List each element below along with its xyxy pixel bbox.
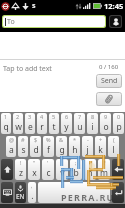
staticText: z [19, 167, 23, 179]
button[interactable]: 1 [1, 113, 11, 134]
staticText: . [31, 190, 34, 202]
button[interactable]: , [28, 182, 36, 203]
staticText: ! [20, 159, 22, 166]
staticText: + [99, 136, 103, 143]
button[interactable]: 4 [37, 113, 47, 134]
staticText: 3 [28, 113, 32, 120]
staticText: b [73, 167, 79, 179]
button[interactable]: ( [108, 136, 119, 157]
button[interactable]: 7 [74, 113, 85, 134]
staticText: c [46, 167, 51, 179]
staticText: g [59, 144, 65, 156]
staticText: 0 / 160 [99, 63, 119, 71]
button[interactable]: 8 [87, 113, 98, 134]
button[interactable]: Send [96, 74, 122, 88]
button[interactable]: - [82, 136, 93, 157]
staticText: m [100, 167, 108, 179]
button[interactable]: Pick contact [110, 16, 121, 27]
button[interactable]: 9 [100, 113, 111, 134]
staticText: j [86, 144, 89, 156]
button[interactable]: 3 [25, 113, 35, 134]
staticText: Send [101, 76, 118, 86]
staticText: 1 [4, 113, 8, 120]
staticText: 4 [40, 113, 44, 120]
button[interactable]: : [56, 159, 68, 180]
staticText: 7 [78, 113, 82, 120]
staticText: n [87, 167, 93, 179]
staticText: EN [16, 192, 25, 201]
button[interactable]: EN [15, 182, 26, 203]
button[interactable]: $ [30, 136, 41, 157]
button[interactable]: Enter [112, 182, 124, 203]
button[interactable]: 2 [13, 113, 23, 134]
staticText: s [21, 144, 26, 156]
staticText: e [28, 121, 33, 133]
staticText: o [103, 121, 109, 133]
button[interactable]: 5 [49, 113, 59, 134]
staticText: 12:45 [104, 1, 124, 11]
staticText: v [60, 167, 65, 179]
button[interactable]: ' [42, 159, 54, 180]
button[interactable]: Backspace [112, 159, 124, 180]
staticText: / [89, 159, 92, 166]
staticText: - [87, 136, 89, 143]
staticText: @ [9, 136, 14, 143]
staticText: , [31, 182, 33, 189]
button[interactable] [38, 182, 110, 203]
staticText: 0 [117, 113, 121, 120]
button[interactable]: 0 [113, 113, 124, 134]
button[interactable]: Tap to add text [0, 60, 96, 112]
button[interactable]: & [56, 136, 67, 157]
staticText: 9 [104, 113, 108, 120]
staticText: Tap to add text [3, 64, 52, 74]
staticText: 8 [91, 113, 95, 120]
button[interactable]: To [3, 16, 105, 27]
staticText: l [112, 144, 115, 156]
staticText: " [33, 159, 36, 166]
staticText: ' [47, 159, 49, 166]
button[interactable]: + [95, 136, 106, 157]
button[interactable]: * [69, 136, 80, 157]
staticText: k [98, 144, 103, 156]
staticText: r [40, 121, 44, 133]
button[interactable]: Keyboard settings [1, 182, 13, 203]
button[interactable]: % [43, 136, 54, 157]
button[interactable]: @ [6, 136, 16, 157]
staticText: h [72, 144, 78, 156]
staticText: : [61, 159, 63, 166]
staticText: w [15, 121, 22, 133]
button[interactable]: ; [70, 159, 82, 180]
staticText: i [91, 121, 94, 133]
staticText: # [21, 136, 25, 143]
button[interactable]: Shift [1, 159, 13, 180]
button[interactable]: / [84, 159, 96, 180]
staticText: * [73, 136, 77, 143]
staticText: d [33, 144, 39, 156]
staticText: t [52, 121, 56, 133]
staticText: p [116, 121, 122, 133]
button[interactable]: ! [15, 159, 26, 180]
button[interactable]: ? [98, 159, 110, 180]
staticText: a [9, 144, 14, 156]
staticText: 6 [65, 113, 69, 120]
staticText: q [3, 121, 9, 133]
staticText: x [32, 167, 37, 179]
staticText: u [77, 121, 83, 133]
button[interactable]: " [28, 159, 40, 180]
staticText: $ [34, 136, 38, 143]
staticText: ? [103, 159, 106, 166]
button[interactable]: Attach [96, 92, 122, 106]
staticText: f [47, 144, 50, 156]
staticText: s [32, 1, 36, 11]
staticText: 5 [52, 113, 56, 120]
staticText: y [64, 121, 69, 133]
staticText: ( [113, 136, 115, 143]
button[interactable]: 6 [61, 113, 72, 134]
staticText: % [46, 136, 51, 143]
staticText: 2 [16, 113, 20, 120]
staticText: To [7, 17, 15, 27]
staticText: & [59, 136, 64, 143]
staticText: ; [75, 159, 77, 166]
button[interactable]: # [18, 136, 28, 157]
staticText: PERRA.RU [61, 191, 115, 203]
